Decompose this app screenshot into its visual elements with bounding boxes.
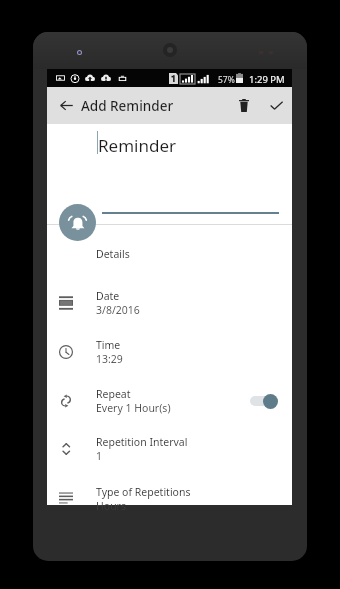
staticText: Time: [96, 338, 121, 352]
staticText: Repeat: [96, 387, 131, 401]
button[interactable]: Save: [260, 87, 292, 124]
button[interactable]: Details: [47, 231, 292, 277]
button[interactable]: Repetition Interval: [47, 426, 292, 472]
staticText: Every 1 Hour(s): [96, 401, 171, 415]
button[interactable]: Toggle repeat: [250, 393, 278, 409]
button[interactable]: Time: [47, 329, 292, 375]
staticText: 57%: [218, 74, 235, 86]
staticText: Type of Repetitions: [96, 485, 191, 499]
button[interactable]: Type of Repetitions: [47, 476, 292, 522]
staticText: 13:29: [96, 352, 123, 366]
staticText: Date: [96, 289, 120, 303]
staticText: Hours: [96, 499, 126, 513]
button[interactable]: Date: [47, 280, 292, 326]
button[interactable]: Notification: [59, 204, 96, 241]
staticText: 1:29 PM: [249, 73, 285, 86]
button[interactable]: Repeat: [47, 378, 292, 424]
staticText: Add Reminder: [81, 97, 174, 115]
staticText: Reminder: [98, 134, 177, 157]
staticText: 3/8/2016: [96, 303, 140, 317]
button[interactable]: Delete: [228, 87, 260, 124]
staticText: Repetition Interval: [96, 435, 188, 449]
staticText: Details: [96, 247, 130, 261]
button[interactable]: Navigate up: [51, 87, 81, 124]
staticText: 1: [96, 449, 103, 463]
